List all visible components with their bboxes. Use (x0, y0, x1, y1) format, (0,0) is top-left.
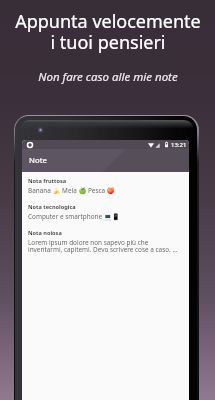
button[interactable]: Nota tecnologica (22, 200, 189, 226)
staticText: Nota fruttosa (28, 177, 67, 185)
staticText: Computer e smartphone 💻📱 (28, 212, 120, 221)
staticText: Note (29, 155, 47, 166)
button[interactable]: Nota fruttosa (22, 174, 189, 200)
staticText: Banana 🍌 Mela 🍏 Pesca 🍑 (28, 186, 115, 195)
staticText: Appunta velocemente i tuoi pensieri (15, 9, 201, 54)
staticText: Nota tecnologica (28, 203, 76, 211)
staticText: Lorem ipsum dolore non sapevo più che in… (28, 238, 181, 254)
staticText: Non fare caso alle mie note (38, 69, 178, 85)
staticText: Nota noiosa (28, 229, 62, 237)
staticText: 13:21 (171, 141, 187, 149)
button[interactable]: Note (22, 149, 189, 172)
button[interactable]: Nota noiosa (22, 226, 189, 259)
